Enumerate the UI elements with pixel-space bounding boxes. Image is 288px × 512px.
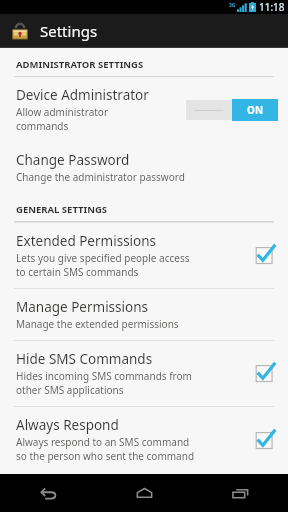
- staticText: 3G: [229, 2, 236, 9]
- staticText: Hide SMS Commands: [16, 350, 153, 368]
- staticText: Always respond to an SMS command: [16, 435, 190, 449]
- staticText: Always Respond: [16, 416, 119, 434]
- staticText: Change Password: [16, 151, 130, 169]
- staticText: Manage Permissions: [16, 298, 149, 316]
- button[interactable]: Back: [0, 474, 96, 512]
- button[interactable]: Device Administrator: [0, 77, 288, 142]
- staticText: Extended Permissions: [16, 232, 157, 250]
- button[interactable]: Extended Permissions: [0, 223, 288, 288]
- staticText: ADMINISTRATOR SETTINGS: [16, 58, 144, 71]
- button[interactable]: Enabled checkbox: [252, 361, 278, 387]
- button[interactable]: Manage Permissions: [0, 289, 288, 340]
- staticText: ON: [247, 103, 264, 117]
- button[interactable]: Recent apps: [192, 474, 288, 512]
- button[interactable]: Device Administrator on: [186, 99, 278, 121]
- button[interactable]: Hide SMS Commands: [0, 341, 288, 406]
- button[interactable]: Enabled checkbox: [252, 428, 278, 454]
- staticText: Allow administrator: [16, 105, 109, 119]
- staticText: Settings: [40, 21, 98, 41]
- staticText: Device Administrator: [16, 86, 149, 104]
- staticText: to certain SMS commands: [16, 265, 139, 279]
- button[interactable]: Always Respond: [0, 407, 288, 474]
- button[interactable]: Enabled checkbox: [252, 243, 278, 269]
- staticText: Manage the extended permissions: [16, 317, 179, 331]
- button[interactable]: Home: [96, 474, 192, 512]
- staticText: 11:18: [259, 0, 285, 14]
- staticText: Lets you give specified people access: [16, 251, 190, 265]
- staticText: commands: [16, 119, 69, 133]
- button[interactable]: Settings: [0, 14, 288, 47]
- staticText: Hides incoming SMS commands from: [16, 369, 192, 383]
- button[interactable]: Change Password: [0, 142, 288, 193]
- staticText: GENERAL SETTINGS: [16, 203, 108, 216]
- staticText: other SMS applications: [16, 383, 124, 397]
- staticText: so the person who sent the command: [16, 449, 195, 463]
- staticText: Change the administrator password: [16, 170, 185, 184]
